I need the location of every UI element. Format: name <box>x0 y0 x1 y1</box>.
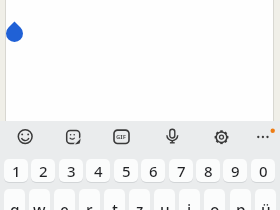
button[interactable]: 1 <box>4 159 28 182</box>
button[interactable]: 5 <box>114 159 138 182</box>
staticText: 5 <box>122 161 131 181</box>
button[interactable]: 4 <box>86 159 110 182</box>
staticText: GIF <box>116 133 126 141</box>
button[interactable]: q <box>4 189 25 210</box>
staticText: 6 <box>149 161 158 181</box>
staticText: e <box>60 199 69 210</box>
staticText: o <box>210 199 220 210</box>
button[interactable] <box>248 122 280 152</box>
staticText: 1 <box>12 161 21 181</box>
button[interactable]: o <box>204 189 225 210</box>
button[interactable]: 7 <box>169 159 193 182</box>
button[interactable]: u <box>154 189 175 210</box>
button[interactable]: t <box>104 189 125 210</box>
button[interactable] <box>203 122 239 152</box>
button[interactable]: 2 <box>31 159 55 182</box>
staticText: 7 <box>177 161 186 181</box>
button[interactable]: 3 <box>59 159 83 182</box>
staticText: t <box>112 199 118 210</box>
button[interactable]: e <box>54 189 75 210</box>
staticText: 3 <box>67 161 76 181</box>
button[interactable]: ü <box>255 189 276 210</box>
button[interactable]: 8 <box>196 159 220 182</box>
button[interactable] <box>7 122 43 152</box>
staticText: p <box>236 199 246 210</box>
staticText: i <box>187 199 192 210</box>
button[interactable]: r <box>79 189 100 210</box>
button[interactable]: 9 <box>223 159 247 182</box>
staticText: q <box>10 199 20 210</box>
staticText: 8 <box>204 161 213 181</box>
button[interactable]: p <box>230 189 251 210</box>
staticText: u <box>160 199 170 210</box>
staticText: r <box>86 199 93 210</box>
button[interactable]: z <box>129 189 150 210</box>
staticText: 2 <box>39 161 48 181</box>
button[interactable] <box>151 122 187 152</box>
button[interactable]: 0 <box>251 159 275 182</box>
button[interactable]: GIF <box>103 122 139 152</box>
staticText: ü <box>261 199 271 210</box>
staticText: 4 <box>94 161 103 181</box>
button[interactable]: 6 <box>141 159 165 182</box>
staticText: w <box>33 199 46 210</box>
button[interactable] <box>55 122 91 152</box>
button[interactable]: i <box>179 189 200 210</box>
staticText: 0 <box>259 161 268 181</box>
staticText: 9 <box>231 161 240 181</box>
button[interactable]: w <box>29 189 50 210</box>
staticText: z <box>136 199 144 210</box>
